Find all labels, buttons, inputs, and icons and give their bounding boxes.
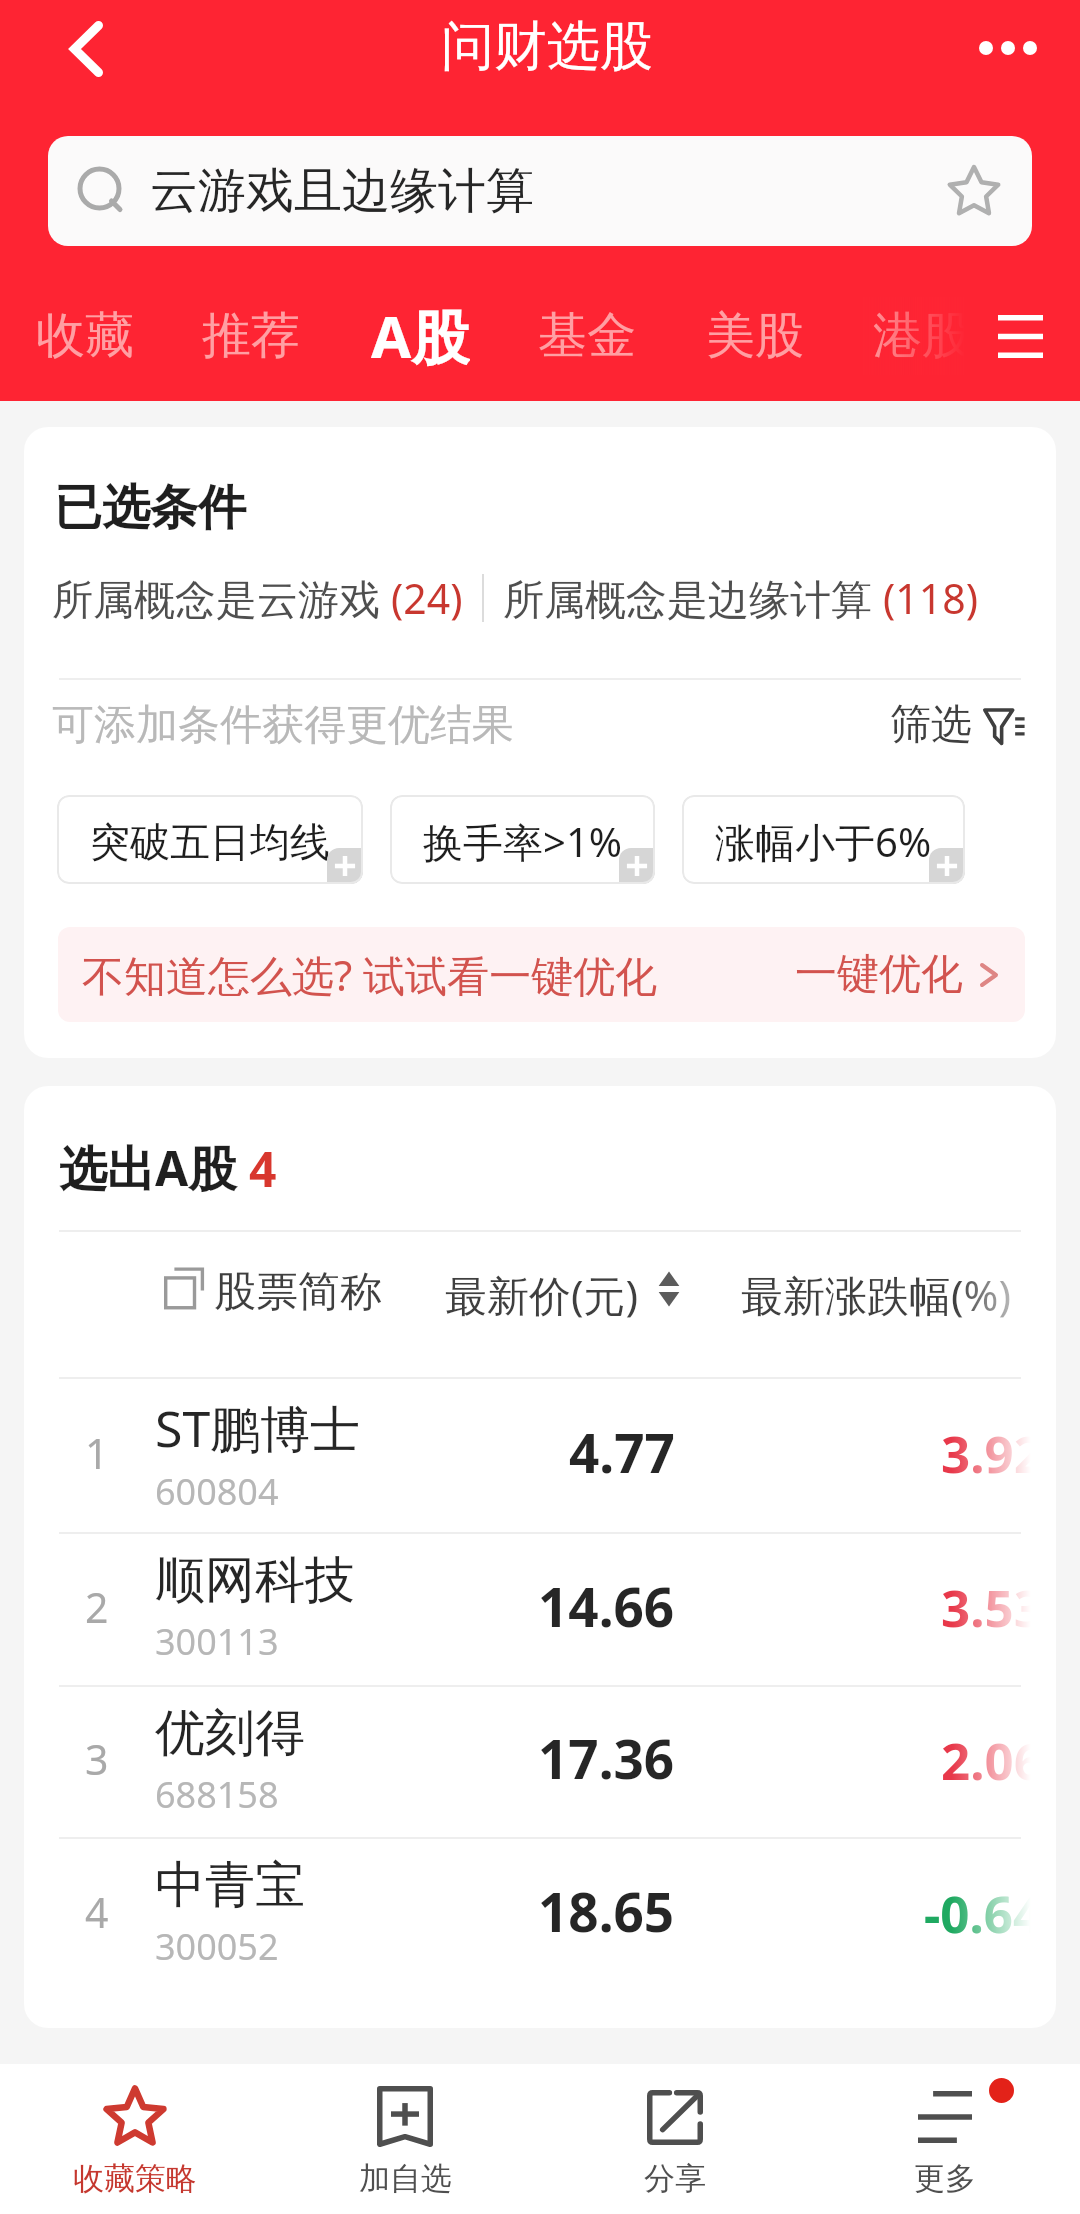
button[interactable]: 港股 [873,297,971,375]
button[interactable]: 更多 [810,2064,1080,2214]
staticText: -0.64 [924,1878,1043,1947]
staticText: 选出A股 [59,1135,249,1201]
staticText: 18.65 [538,1875,675,1947]
button[interactable]: 筛选 [890,699,1025,751]
button[interactable]: 3 [24,1687,1056,1837]
staticText: 一键优化 [795,948,963,1001]
staticText: 2.06 [941,1725,1043,1794]
staticText: ST鹏博士 [155,1394,361,1462]
button[interactable]: All tabs [975,292,1065,380]
staticText: A股 [371,296,470,374]
staticText: 港股 [873,305,971,367]
button[interactable]: 美股 [706,297,804,375]
staticText: 3.92 [941,1418,1043,1487]
button[interactable]: Back [50,13,122,85]
button[interactable]: 分享 [540,2064,810,2214]
button[interactable]: 收藏策略 [0,2064,270,2214]
staticText: 不知道怎么选? 试试看一键优化 [82,946,658,1003]
staticText: 3 [85,1731,109,1787]
button[interactable]: 突破五日均线 [57,795,363,884]
staticText: 4 [85,1884,109,1940]
staticText: 4.77 [569,1416,675,1488]
staticText: 基金 [538,305,636,367]
button[interactable]: 推荐 [202,297,300,375]
staticText: 最新价(元) [445,1266,639,1323]
staticText: (118) [883,570,978,626]
staticText: 收藏策略 [73,2159,197,2198]
staticText: 最新涨跌幅(%) [741,1266,1012,1323]
staticText: 股票简称 [214,1266,382,1319]
button[interactable]: A股 [371,297,470,375]
staticText: 推荐 [202,305,300,367]
staticText: 所属概念是边缘计算 [503,570,883,626]
staticText: 顺网科技 [155,1549,355,1612]
button[interactable]: 加自选 [270,2064,540,2214]
button[interactable]: 涨幅小于6% [682,795,965,884]
staticText: 3.53 [941,1572,1043,1641]
button[interactable]: 4 [24,1839,1056,1991]
staticText: 1 [85,1425,109,1481]
staticText: 4 [249,1136,277,1201]
button[interactable]: 收藏 [36,297,134,375]
button[interactable]: 1 [24,1379,1056,1532]
button[interactable]: 基金 [538,297,636,375]
staticText: 300052 [155,1922,279,1971]
staticText: 问财选股 [441,13,653,80]
staticText: 分享 [644,2159,706,2198]
button[interactable]: 换手率>1% [390,795,655,884]
staticText: 2 [85,1579,109,1635]
staticText: 云游戏且边缘计算 [150,161,947,221]
staticText: 收藏 [36,305,134,367]
staticText: 17.36 [538,1722,675,1794]
staticText: 688158 [155,1770,279,1819]
button[interactable]: More options [950,12,1065,84]
staticText: 600804 [155,1467,279,1516]
staticText: 加自选 [359,2159,452,2198]
staticText: 中青宝 [155,1854,305,1917]
staticText: 所属概念是云游戏 [52,570,391,626]
staticText: 300113 [155,1617,279,1666]
staticText: 涨幅小于6% [715,814,932,869]
button[interactable]: 云游戏且边缘计算 [48,136,1032,246]
staticText: 可添加条件获得更优结果 [52,699,514,752]
staticText: (24) [391,570,463,626]
staticText: 突破五日均线 [90,817,330,867]
button[interactable]: 2 [24,1534,1056,1685]
staticText: 美股 [706,305,804,367]
button[interactable]: 不知道怎么选? 试试看一键优化 [58,927,1025,1022]
staticText: 更多 [914,2159,976,2198]
staticText: 已选条件 [54,478,246,538]
staticText: 筛选 [890,699,972,751]
staticText: 14.66 [538,1570,675,1642]
staticText: 优刻得 [155,1702,305,1765]
staticText: 换手率>1% [423,814,622,869]
